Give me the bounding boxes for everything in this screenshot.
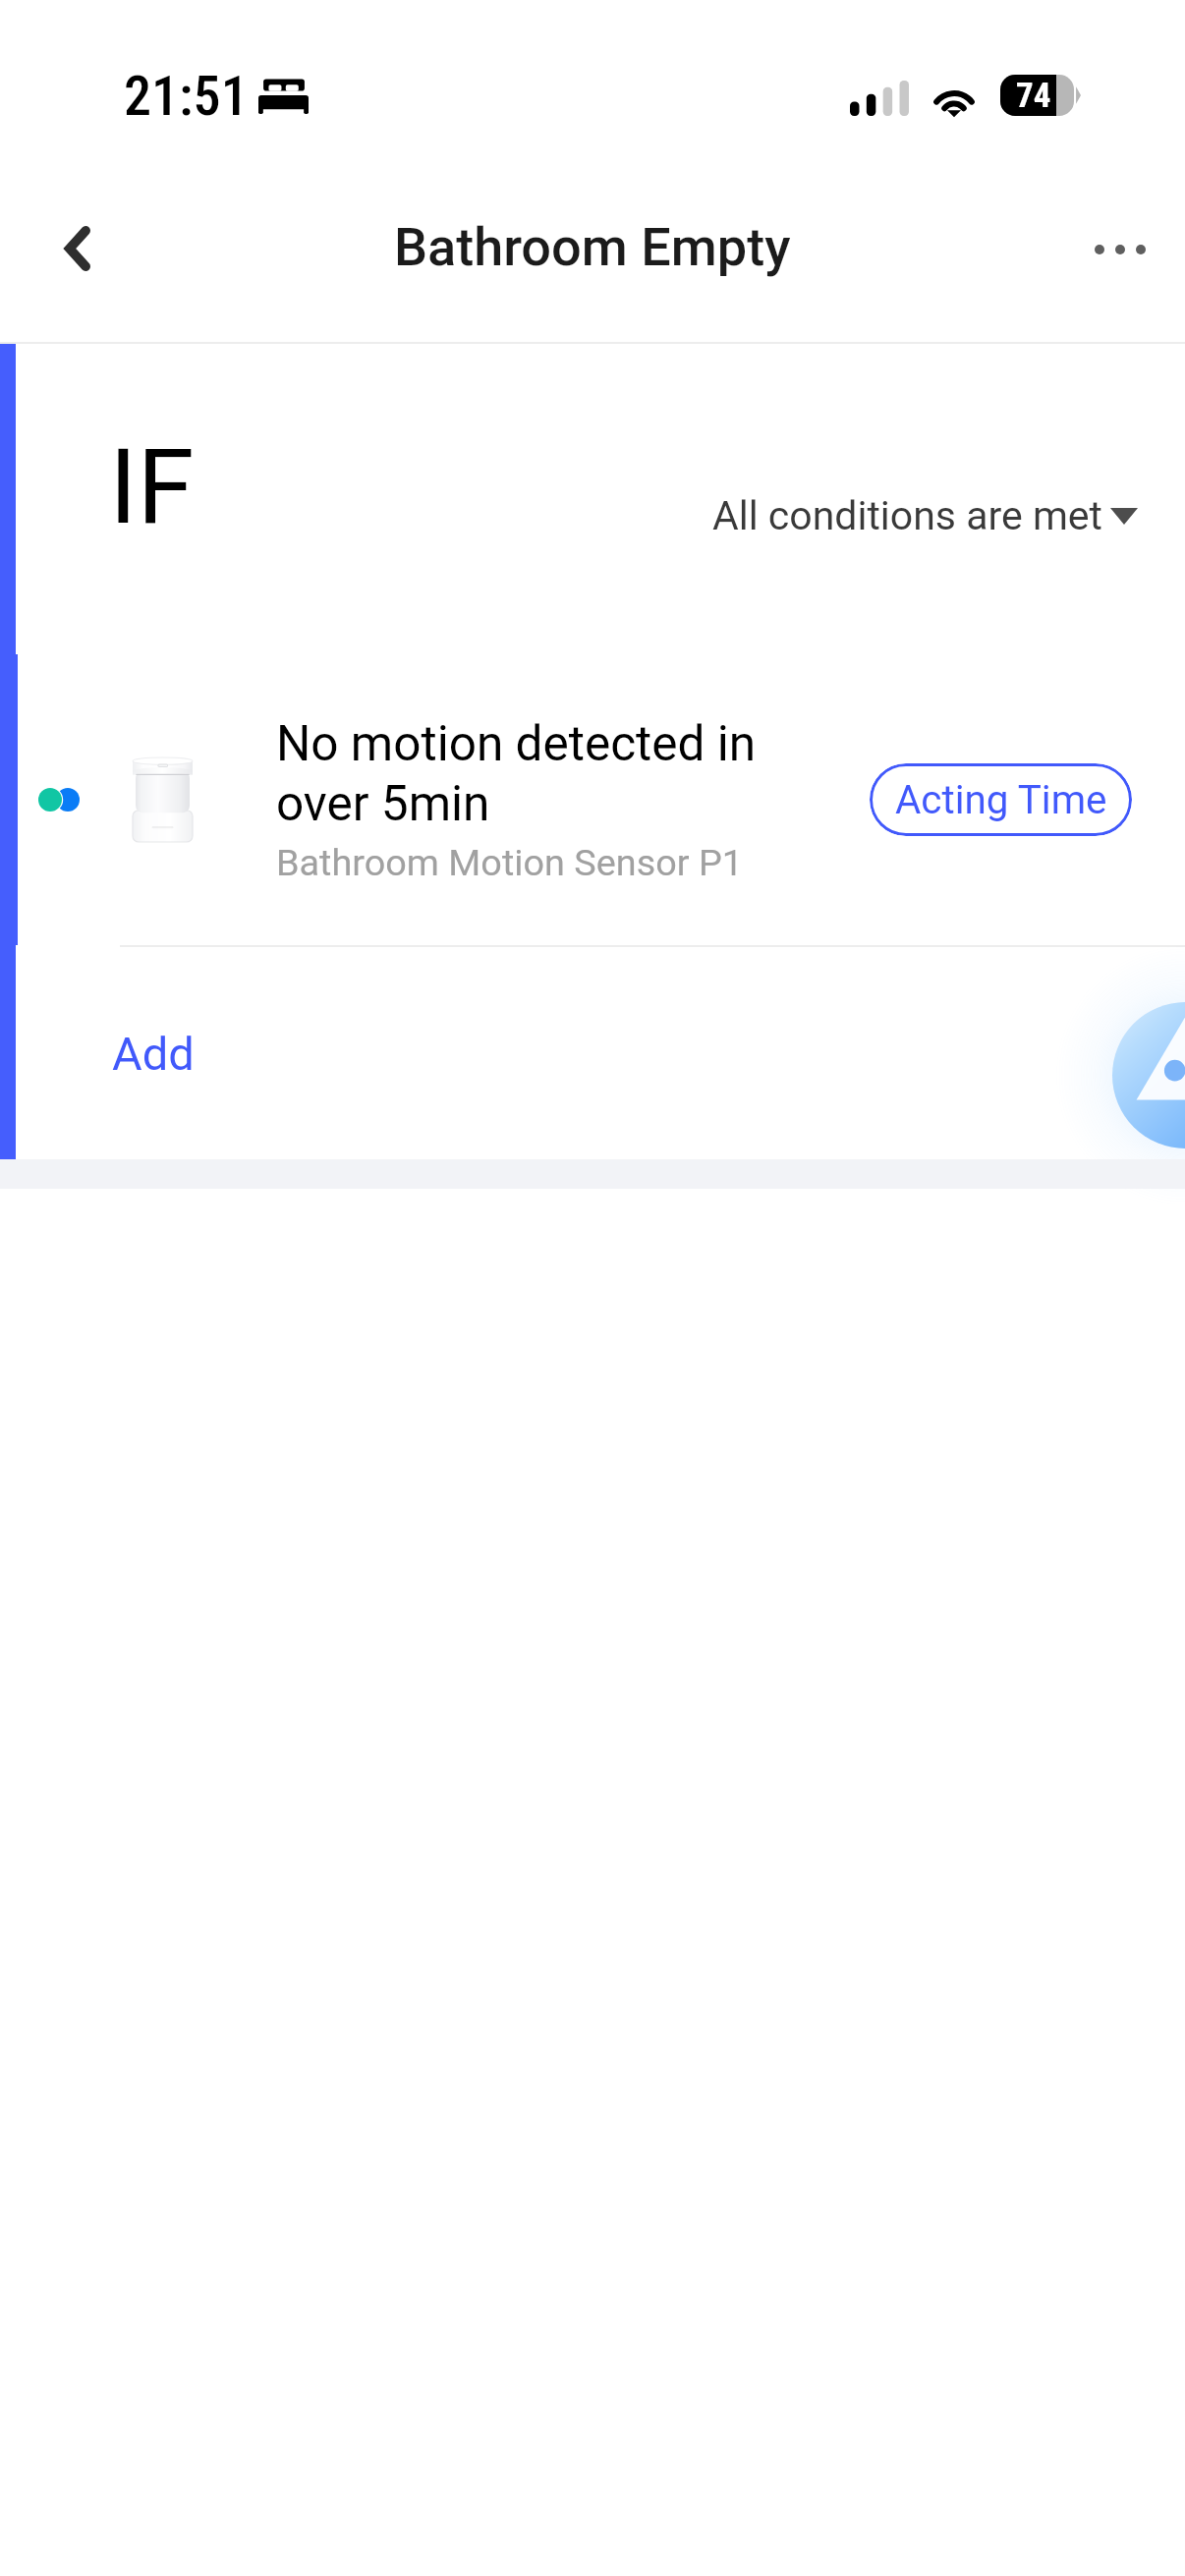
staticText: IF [109,427,195,548]
button[interactable]: No motion detected in over 5min [0,654,1185,945]
staticText: All conditions are met [712,492,1103,539]
button[interactable]: Add [0,947,1185,1159]
staticText: No motion detected in over 5min [276,715,757,832]
staticText: 21:51 [124,64,249,129]
button[interactable]: Acting Time [870,763,1132,836]
staticText: Bathroom Motion Sensor P1 [276,841,743,884]
staticText: Bathroom Empty [394,216,791,278]
button[interactable]: AI assistant [1053,943,1185,1207]
button[interactable]: Back [28,199,127,298]
staticText: Add [112,1027,195,1081]
button[interactable]: More options [1069,198,1171,301]
button[interactable]: All conditions are met [712,492,1138,539]
staticText: Acting Time [895,777,1107,823]
staticText: 74 [1016,76,1051,116]
